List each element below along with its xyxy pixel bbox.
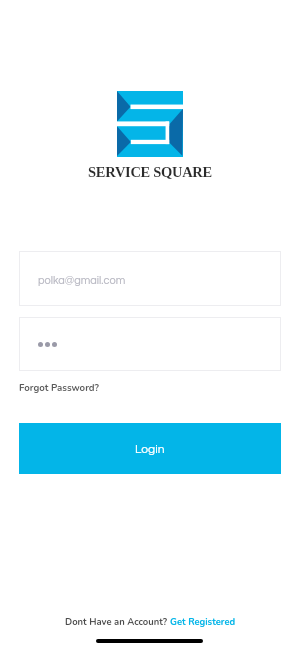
staticText: SERVICE SQUARE [0,164,300,180]
button[interactable]: Get Registered [170,615,236,628]
button[interactable] [19,317,281,371]
staticText: Dont Have an Account? [65,615,170,628]
staticText: Forgot Password? [19,381,99,394]
button[interactable]: Login [19,423,281,474]
button[interactable]: Forgot Password? [19,381,99,394]
button[interactable]: polka@gmail.com [19,251,281,306]
staticText: Login [135,443,165,455]
staticText: polka@gmail.com [38,275,126,286]
staticText: Get Registered [170,615,236,628]
